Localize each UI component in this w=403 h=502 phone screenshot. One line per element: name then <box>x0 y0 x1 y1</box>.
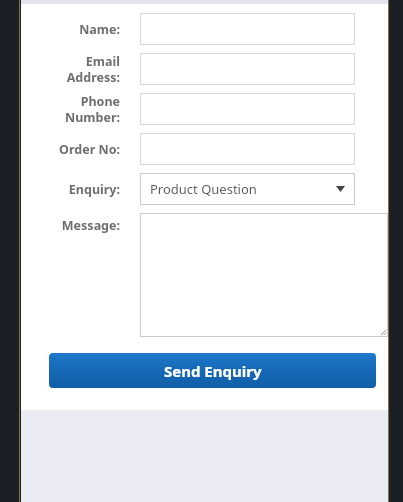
staticText: Message: <box>41 217 120 234</box>
other: Open enquiry type list <box>336 186 345 192</box>
staticText: Send Enquiry <box>164 361 262 381</box>
button[interactable]: Product Question <box>140 173 355 205</box>
staticText: Product Question <box>150 180 257 198</box>
staticText: Email Address: <box>41 53 120 85</box>
button[interactable] <box>140 53 355 85</box>
staticText: Name: <box>41 21 120 38</box>
staticText: Enquiry: <box>41 181 120 198</box>
button[interactable] <box>140 13 355 45</box>
staticText: Order No: <box>41 141 120 158</box>
button[interactable] <box>140 213 388 337</box>
staticText: Phone Number: <box>41 93 120 125</box>
button[interactable] <box>140 93 355 125</box>
button[interactable]: Send Enquiry <box>49 353 376 388</box>
button[interactable] <box>140 133 355 165</box>
